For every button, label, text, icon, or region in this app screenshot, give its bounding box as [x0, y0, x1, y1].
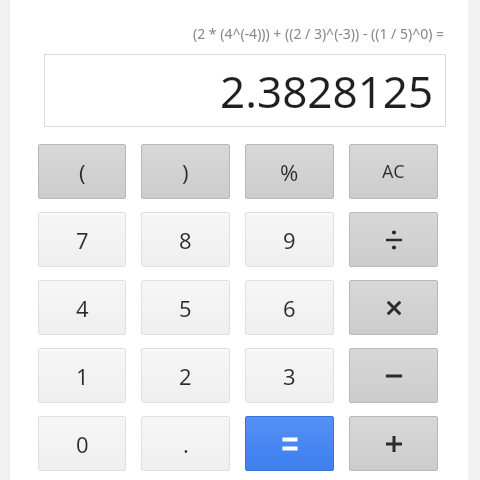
button[interactable]: 9	[245, 212, 334, 267]
button[interactable]: 5	[141, 280, 230, 335]
button[interactable]: Plus	[349, 416, 438, 471]
button[interactable]: 7	[38, 212, 126, 267]
staticText: 3	[283, 361, 296, 391]
staticText: )	[182, 157, 189, 187]
staticText: (2 * (4^(-4))) + ((2 / 3)^(-3)) - ((1 / …	[34, 24, 444, 43]
staticText: 2	[179, 361, 192, 391]
button[interactable]: 0	[38, 416, 126, 471]
button[interactable]: 8	[141, 212, 230, 267]
staticText: 7	[76, 225, 89, 255]
staticText: %	[280, 157, 299, 187]
staticText: 0	[76, 429, 89, 459]
staticText: 5	[179, 293, 192, 323]
button[interactable]: Minus	[349, 348, 438, 403]
button[interactable]: Divide	[349, 212, 438, 267]
button[interactable]: %	[245, 144, 334, 199]
button[interactable]: 2	[141, 348, 230, 403]
button[interactable]: Multiply	[349, 280, 438, 335]
button[interactable]: 3	[245, 348, 334, 403]
button[interactable]: )	[141, 144, 230, 199]
staticText: .	[183, 429, 189, 459]
staticText: AC	[382, 159, 405, 184]
button[interactable]: AC	[349, 144, 438, 199]
staticText: 4	[76, 293, 89, 323]
button[interactable]: .	[141, 416, 230, 471]
button[interactable]: Equals	[245, 416, 334, 471]
staticText: 6	[283, 293, 296, 323]
button[interactable]: 1	[38, 348, 126, 403]
staticText: 1	[76, 361, 89, 391]
staticText: 2.3828125	[220, 61, 434, 121]
button[interactable]: 4	[38, 280, 126, 335]
button[interactable]: (	[38, 144, 126, 199]
button[interactable]: 6	[245, 280, 334, 335]
staticText: 9	[283, 225, 296, 255]
staticText: 8	[179, 225, 192, 255]
staticText: (	[79, 157, 86, 187]
